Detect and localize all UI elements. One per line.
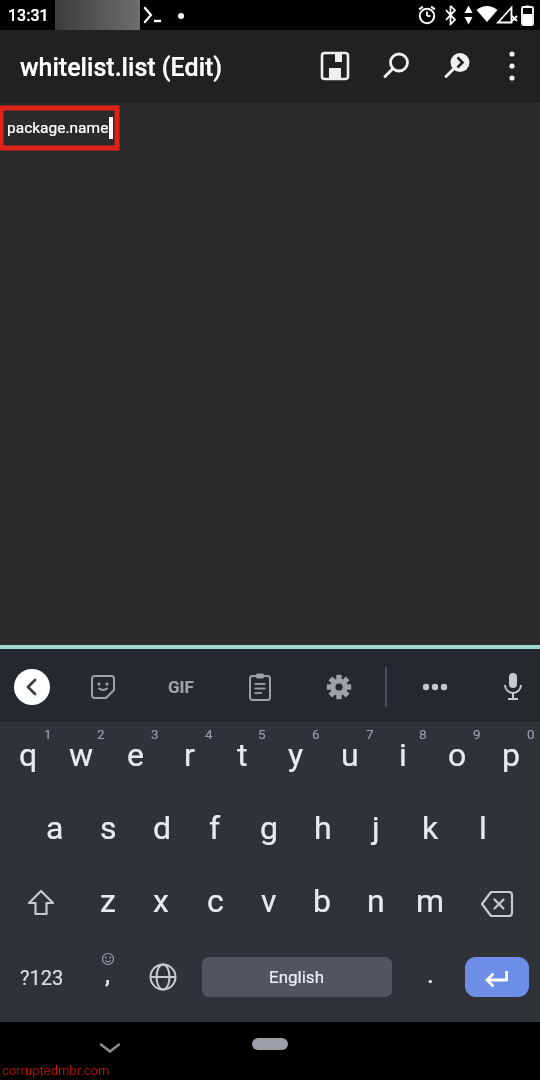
staticText: 8 — [419, 726, 427, 742]
staticText: 2 — [97, 726, 105, 742]
staticText: 7 — [366, 726, 374, 742]
button[interactable]: English — [202, 957, 392, 997]
staticText: i — [399, 736, 407, 774]
staticText: n — [367, 882, 385, 920]
staticText: y — [288, 736, 304, 774]
staticText: p — [502, 736, 520, 774]
staticText: 4 — [205, 726, 213, 742]
button[interactable] — [90, 674, 116, 700]
staticText: l — [479, 809, 487, 847]
staticText: ?123 — [20, 966, 64, 989]
staticText: t — [237, 736, 248, 774]
staticText: d — [153, 809, 172, 847]
staticText: k — [422, 809, 439, 847]
staticText: q — [19, 736, 38, 774]
staticText: v — [261, 882, 277, 920]
staticText: whitelist.list (Edit) — [20, 53, 223, 82]
button[interactable] — [99, 1042, 121, 1054]
button[interactable] — [481, 891, 513, 917]
staticText: j — [372, 809, 380, 847]
staticText: r — [184, 736, 195, 774]
button[interactable] — [252, 1038, 288, 1050]
staticText: a — [46, 809, 64, 847]
staticText: c — [207, 882, 224, 920]
staticText: z — [100, 882, 116, 920]
staticText: x — [153, 882, 169, 920]
button[interactable] — [382, 51, 412, 81]
staticText: 3 — [151, 726, 159, 742]
staticText: . — [427, 959, 434, 989]
button[interactable] — [149, 963, 177, 991]
staticText: w — [69, 736, 94, 774]
button[interactable] — [502, 672, 524, 702]
button[interactable] — [443, 51, 473, 81]
staticText: h — [314, 809, 332, 847]
button[interactable] — [14, 669, 50, 705]
button[interactable] — [325, 673, 353, 701]
staticText: English — [269, 967, 325, 987]
staticText: g — [260, 809, 278, 847]
button[interactable] — [465, 957, 529, 997]
staticText: 6 — [312, 726, 320, 742]
button[interactable] — [26, 889, 56, 917]
button[interactable] — [248, 673, 272, 701]
staticText: b — [313, 882, 331, 920]
staticText: 1 — [44, 726, 52, 742]
staticText: 9 — [473, 726, 481, 742]
staticText: GIF — [168, 677, 194, 697]
button[interactable] — [422, 681, 448, 693]
staticText: s — [100, 809, 117, 847]
staticText: e — [127, 736, 144, 774]
staticText: u — [341, 736, 359, 774]
button[interactable] — [505, 48, 519, 84]
staticText: , — [105, 959, 111, 989]
staticText: m — [416, 882, 445, 920]
button[interactable] — [320, 51, 350, 81]
staticText: o — [448, 736, 467, 774]
staticText: 5 — [258, 726, 266, 742]
staticText: f — [209, 809, 221, 847]
staticText: package.name — [7, 119, 109, 137]
staticText: 0 — [527, 726, 535, 742]
staticText: corruptedmbr.com — [2, 1063, 110, 1078]
staticText: 13:31 — [8, 6, 49, 25]
